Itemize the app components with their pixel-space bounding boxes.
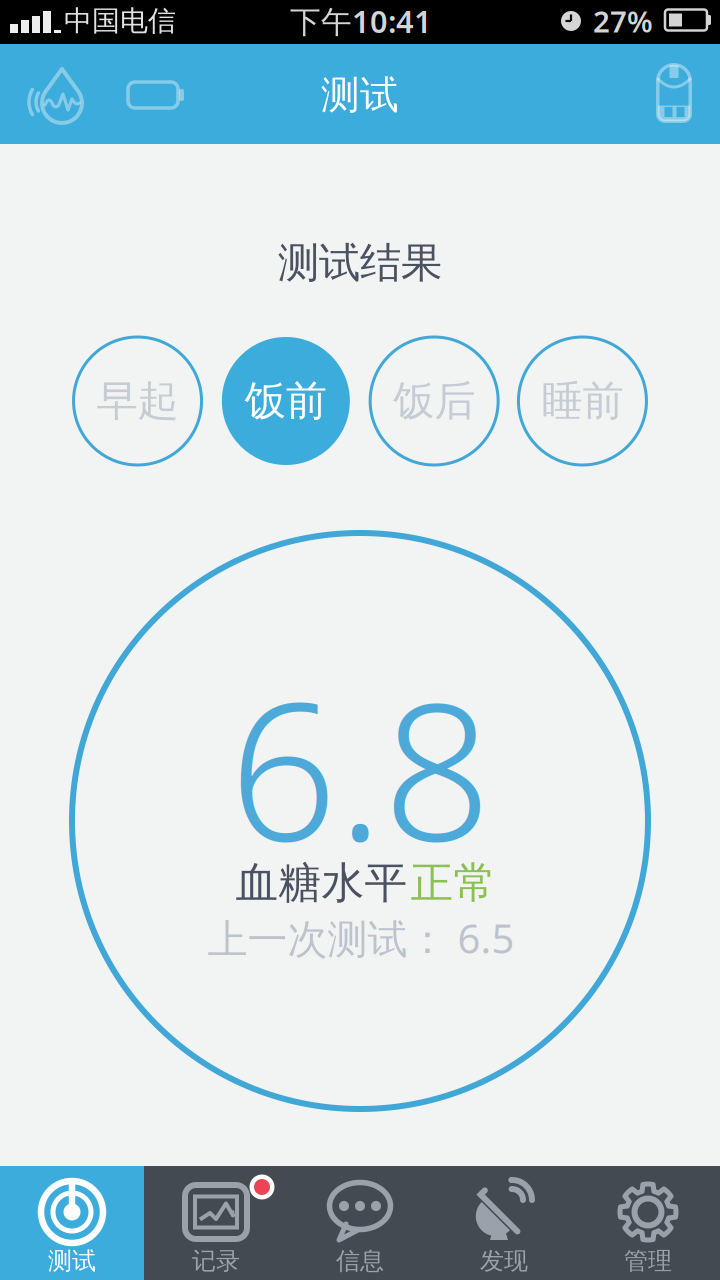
staticText: 血糖水平 [235,857,407,909]
button[interactable]: 记录 [144,1166,288,1280]
button[interactable]: 饭后 [370,337,498,465]
button[interactable]: 血糖趋势 [24,62,90,128]
staticText: 测试 [321,71,399,119]
staticText: 饭前 [245,376,327,426]
button[interactable]: 发现 [432,1166,576,1280]
staticText: 管理 [624,1246,672,1276]
button[interactable]: 饭前 [222,337,350,465]
staticText: 记录 [192,1246,240,1276]
staticText: 6.8 [229,641,491,893]
button[interactable]: 血糖仪 [656,63,692,123]
staticText: 测试 [48,1246,96,1276]
staticText: 中国电信 [64,4,176,38]
staticText: 测试结果 [278,238,442,288]
staticText: 发现 [480,1246,528,1276]
staticText: 正常 [410,857,496,909]
staticText: 下午10:41 [290,1,432,41]
button[interactable]: 信息 [288,1166,432,1280]
staticText: 饭后 [393,376,475,426]
button[interactable]: 测试 [0,1166,144,1280]
staticText: 睡前 [541,376,623,426]
button[interactable]: 睡前 [518,337,646,465]
button[interactable]: 电量 [128,80,184,110]
button[interactable]: 早起 [74,337,202,465]
staticText: 信息 [336,1246,384,1276]
staticText: 上一次测试： 6.5 [207,911,514,964]
staticText: 27% [593,1,653,40]
staticText: 早起 [97,376,179,426]
button[interactable]: 管理 [576,1166,720,1280]
